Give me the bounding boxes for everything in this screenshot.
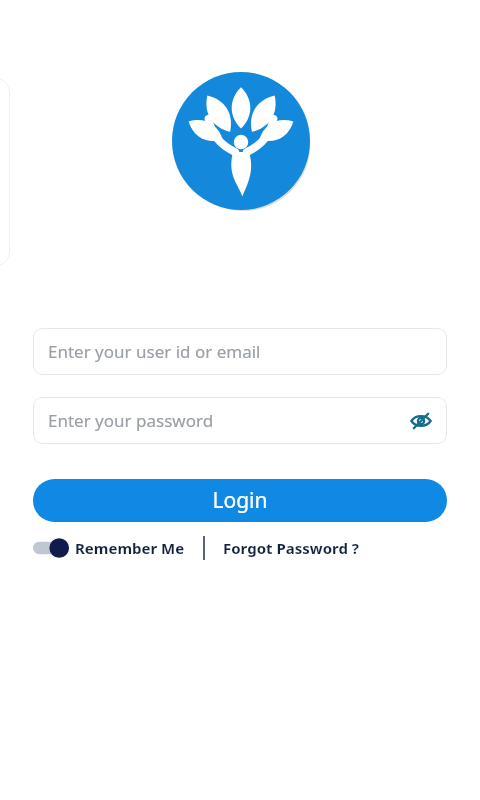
button[interactable]: Forgot Password ? xyxy=(223,536,359,560)
staticText: Enter your password xyxy=(48,409,214,432)
button[interactable]: Login xyxy=(33,479,447,522)
staticText: Forgot Password ? xyxy=(223,538,359,558)
button[interactable]: Remember Me xyxy=(33,536,185,560)
button[interactable]: Enter your password xyxy=(33,397,447,444)
button[interactable]: Enter your user id or email xyxy=(33,328,447,375)
staticText: Enter your user id or email xyxy=(48,340,261,363)
staticText: Remember Me xyxy=(75,538,185,558)
button[interactable]: Show password xyxy=(405,405,437,437)
staticText: Login xyxy=(212,486,268,515)
